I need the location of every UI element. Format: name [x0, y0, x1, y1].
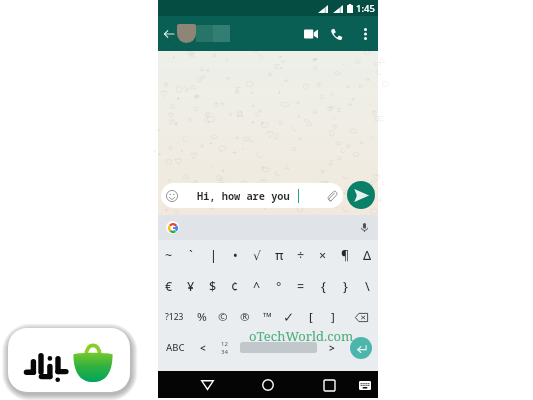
- button[interactable]: π: [268, 240, 290, 271]
- staticText: ✓: [283, 309, 295, 325]
- button[interactable]: {: [312, 271, 334, 302]
- button[interactable]: Video call: [301, 24, 321, 44]
- staticText: √: [253, 248, 261, 263]
- staticText: 12: [221, 340, 228, 348]
- staticText: [: [309, 309, 313, 325]
- staticText: €: [165, 278, 173, 295]
- button[interactable]: More options: [355, 24, 375, 44]
- button[interactable]: ABC: [158, 332, 192, 363]
- staticText: Δ: [363, 247, 372, 264]
- button[interactable]: \: [356, 271, 378, 302]
- staticText: ÷: [297, 247, 305, 264]
- button[interactable]: ¶: [334, 240, 356, 271]
- staticText: >: [329, 341, 335, 355]
- button[interactable]: Voice call: [326, 24, 346, 44]
- staticText: \: [365, 278, 370, 295]
- button[interactable]: Google Search: [166, 221, 179, 234]
- button[interactable]: %: [191, 302, 212, 332]
- button[interactable]: 12: [213, 332, 235, 363]
- staticText: |: [210, 247, 217, 264]
- button[interactable]: ~: [158, 240, 180, 271]
- button[interactable]: ×: [312, 240, 334, 271]
- button[interactable]: Recent apps: [318, 374, 340, 396]
- button[interactable]: €: [158, 271, 180, 302]
- staticText: ]: [331, 309, 335, 325]
- staticText: ©: [218, 309, 228, 325]
- staticText: ~: [165, 247, 173, 264]
- staticText: %: [197, 309, 207, 325]
- staticText: ×: [319, 247, 327, 264]
- staticText: oTechWorld.com: [249, 327, 354, 345]
- button[interactable]: ✓: [278, 302, 300, 332]
- button[interactable]: Enter: [350, 337, 372, 359]
- button[interactable]: }: [334, 271, 356, 302]
- button[interactable]: Voice input: [358, 221, 371, 234]
- button[interactable]: <: [192, 332, 213, 363]
- staticText: °: [276, 278, 282, 295]
- button[interactable]: |: [202, 240, 224, 271]
- button[interactable]: Home: [257, 374, 279, 396]
- button[interactable]: Hi, how are you: [161, 183, 343, 208]
- button[interactable]: Cafe Bazaar: [8, 328, 130, 392]
- button[interactable]: ?123: [158, 302, 191, 332]
- staticText: 1:45: [356, 2, 375, 15]
- staticText: 34: [221, 348, 228, 356]
- button[interactable]: [: [300, 302, 322, 332]
- staticText: {: [321, 278, 326, 295]
- button[interactable]: ¥: [180, 271, 202, 302]
- button[interactable]: `: [180, 240, 202, 271]
- staticText: `: [189, 247, 193, 264]
- staticText: ¢: [231, 278, 239, 295]
- staticText: }: [343, 278, 348, 295]
- button[interactable]: ®: [234, 302, 256, 332]
- button[interactable]: ^: [246, 271, 268, 302]
- staticText: Hi, how are you: [197, 189, 290, 203]
- button[interactable]: >: [321, 332, 343, 363]
- button[interactable]: ©: [212, 302, 234, 332]
- staticText: <: [200, 341, 206, 355]
- button[interactable]: =: [290, 271, 312, 302]
- button[interactable]: ™: [256, 302, 278, 332]
- button[interactable]: ¢: [224, 271, 246, 302]
- staticText: ™: [263, 309, 272, 325]
- button[interactable]: Back: [196, 374, 218, 396]
- button[interactable]: ]: [322, 302, 344, 332]
- staticText: π: [275, 247, 284, 264]
- button[interactable]: •: [224, 240, 246, 271]
- button[interactable]: Back: [161, 26, 177, 42]
- staticText: ®: [240, 309, 250, 325]
- staticText: ¥: [187, 278, 195, 295]
- staticText: =: [297, 278, 305, 295]
- staticText: ABC: [166, 341, 185, 354]
- staticText: ¶: [341, 247, 350, 264]
- button[interactable]: $: [202, 271, 224, 302]
- button[interactable]: Send: [347, 181, 375, 209]
- button[interactable]: Backspace: [344, 302, 378, 332]
- button[interactable]: √: [246, 240, 268, 271]
- button[interactable]: ÷: [290, 240, 312, 271]
- button[interactable]: Δ: [356, 240, 378, 271]
- staticText: •: [233, 247, 238, 264]
- staticText: $: [209, 278, 217, 295]
- button[interactable]: °: [268, 271, 290, 302]
- staticText: ^: [253, 278, 261, 295]
- staticText: ?123: [165, 311, 184, 323]
- button[interactable]: Contact avatar: [177, 24, 196, 43]
- button[interactable]: Switch keyboard: [354, 374, 376, 396]
